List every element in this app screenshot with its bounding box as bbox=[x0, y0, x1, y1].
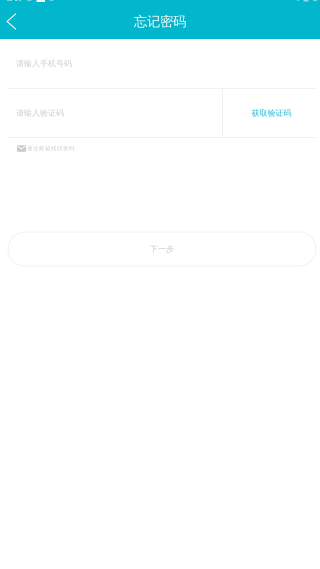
button[interactable]: 获取验证码 bbox=[223, 89, 320, 137]
button[interactable]: 通过邮箱找回密码 bbox=[0, 138, 320, 159]
staticText: 请输入验证码 bbox=[16, 108, 64, 118]
staticText: 请输入手机号码 bbox=[16, 59, 72, 68]
button[interactable]: Back bbox=[0, 0, 23, 39]
staticText: 通过邮箱找回密码 bbox=[27, 145, 74, 152]
staticText: 下一步 bbox=[150, 244, 174, 254]
staticText: 获取验证码 bbox=[251, 108, 291, 118]
staticText: 忘记密码 bbox=[134, 13, 186, 30]
